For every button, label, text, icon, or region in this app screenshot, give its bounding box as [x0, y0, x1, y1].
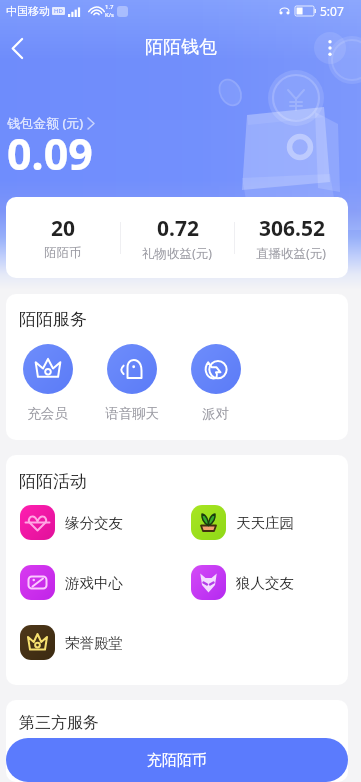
- button[interactable]: 派对: [182, 344, 249, 422]
- staticText: 306.52: [259, 214, 325, 243]
- button[interactable]: 306.52: [235, 214, 348, 262]
- staticText: 天天庄园: [236, 514, 294, 532]
- staticText: 20: [51, 214, 76, 243]
- staticText: 0.72: [157, 214, 199, 243]
- button[interactable]: 20: [6, 214, 120, 261]
- button[interactable]: 狼人交友: [191, 565, 294, 600]
- staticText: 5:07: [320, 3, 344, 19]
- staticText: 充会员: [27, 405, 68, 422]
- staticText: 陌陌币: [44, 245, 82, 261]
- staticText: 陌陌钱包: [145, 36, 217, 59]
- button[interactable]: Back: [3, 34, 31, 62]
- staticText: 钱包金额 (元): [7, 114, 84, 132]
- button[interactable]: 0.72: [121, 214, 234, 262]
- staticText: 礼物收益(元): [142, 245, 213, 262]
- button[interactable]: 缘分交友: [20, 505, 123, 540]
- staticText: HD: [54, 7, 63, 15]
- staticText: 第三方服务: [19, 713, 99, 733]
- staticText: 派对: [202, 405, 229, 422]
- staticText: 充陌陌币: [147, 751, 207, 770]
- button[interactable]: 游戏中心: [20, 565, 123, 600]
- button[interactable]: 钱包金额 (元): [7, 114, 94, 132]
- staticText: 1.7: [105, 3, 114, 11]
- staticText: 狼人交友: [236, 574, 294, 592]
- staticText: 陌陌服务: [19, 309, 87, 330]
- button[interactable]: 语音聊天: [98, 344, 165, 422]
- button[interactable]: More options: [314, 32, 346, 64]
- staticText: 陌陌活动: [19, 471, 87, 492]
- button[interactable]: 充陌陌币: [6, 738, 348, 782]
- button[interactable]: 充会员: [14, 344, 81, 422]
- staticText: 语音聊天: [105, 405, 159, 422]
- staticText: K/s: [105, 11, 114, 19]
- button[interactable]: 荣誉殿堂: [20, 625, 123, 660]
- staticText: 中国移动: [6, 4, 50, 18]
- staticText: 0.09: [7, 124, 93, 183]
- staticText: 直播收益(元): [256, 245, 327, 262]
- staticText: 荣誉殿堂: [65, 634, 123, 652]
- staticText: 游戏中心: [65, 574, 123, 592]
- staticText: 缘分交友: [65, 514, 123, 532]
- button[interactable]: 天天庄园: [191, 505, 294, 540]
